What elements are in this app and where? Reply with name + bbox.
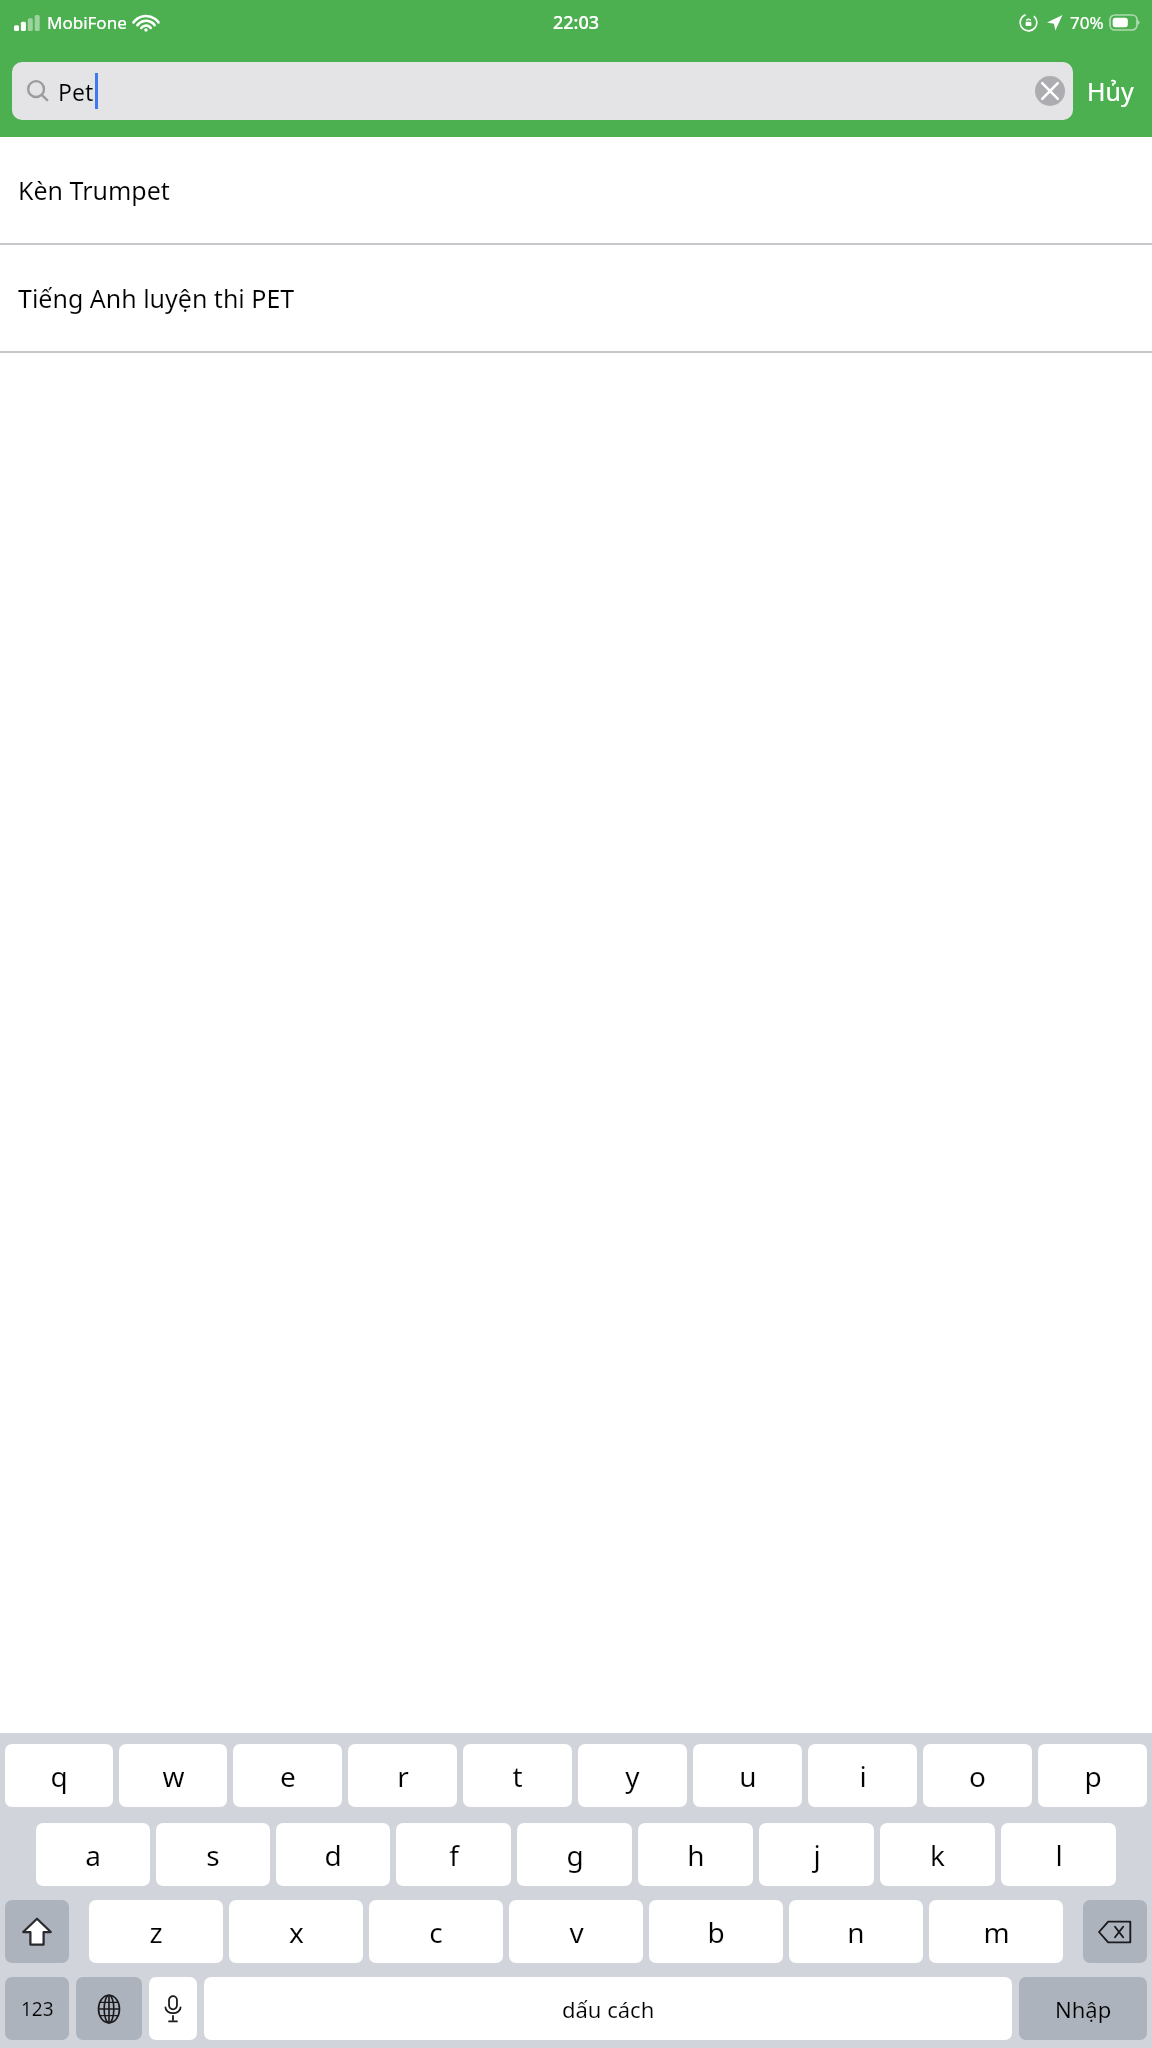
button[interactable]: r bbox=[348, 1744, 457, 1807]
button[interactable]: u bbox=[693, 1744, 802, 1807]
staticText: i bbox=[859, 1757, 867, 1795]
button[interactable]: i bbox=[808, 1744, 917, 1807]
staticText: n bbox=[847, 1913, 865, 1951]
button[interactable]: t bbox=[463, 1744, 572, 1807]
button[interactable]: Hủy bbox=[1073, 61, 1148, 121]
button[interactable]: o bbox=[923, 1744, 1032, 1807]
staticText: y bbox=[625, 1757, 640, 1795]
button[interactable]: dấu cách bbox=[204, 1977, 1012, 2040]
button[interactable]: Change keyboard language bbox=[76, 1977, 142, 2040]
staticText: Nhập bbox=[1055, 1994, 1112, 2024]
button[interactable]: Nhập bbox=[1019, 1977, 1147, 2040]
button[interactable]: Kèn Trumpet bbox=[0, 137, 1152, 243]
button[interactable]: f bbox=[396, 1823, 511, 1886]
staticText: 123 bbox=[21, 1996, 54, 2022]
staticText: u bbox=[739, 1757, 757, 1795]
staticText: b bbox=[707, 1913, 725, 1951]
staticText: 70% bbox=[1070, 11, 1104, 34]
staticText: f bbox=[449, 1836, 459, 1874]
button[interactable]: e bbox=[233, 1744, 342, 1807]
button[interactable]: c bbox=[369, 1900, 503, 1963]
button[interactable]: l bbox=[1001, 1823, 1116, 1886]
button[interactable]: b bbox=[649, 1900, 783, 1963]
staticText: e bbox=[280, 1757, 296, 1795]
button[interactable]: x bbox=[229, 1900, 363, 1963]
staticText: a bbox=[85, 1836, 101, 1874]
button[interactable]: w bbox=[119, 1744, 227, 1807]
button[interactable]: j bbox=[759, 1823, 874, 1886]
button[interactable]: Shift bbox=[5, 1900, 69, 1963]
staticText: w bbox=[162, 1757, 185, 1795]
staticText: m bbox=[983, 1913, 1010, 1951]
staticText: q bbox=[50, 1757, 68, 1795]
button[interactable]: m bbox=[929, 1900, 1063, 1963]
button[interactable]: Dictation bbox=[149, 1977, 197, 2040]
button[interactable]: a bbox=[36, 1823, 150, 1886]
button[interactable]: Backspace bbox=[1083, 1900, 1147, 1963]
staticText: p bbox=[1084, 1757, 1102, 1795]
button[interactable]: n bbox=[789, 1900, 923, 1963]
staticText: Pet bbox=[58, 76, 94, 107]
button[interactable]: d bbox=[276, 1823, 390, 1886]
staticText: g bbox=[566, 1836, 584, 1874]
button[interactable]: g bbox=[517, 1823, 632, 1886]
button[interactable]: Pet bbox=[12, 62, 1073, 120]
button[interactable]: s bbox=[156, 1823, 270, 1886]
staticText: x bbox=[289, 1913, 304, 1951]
staticText: Tiếng Anh luyện thi PET bbox=[18, 281, 295, 315]
button[interactable]: Clear text bbox=[1033, 74, 1067, 108]
staticText: 22:03 bbox=[553, 10, 600, 35]
button[interactable]: z bbox=[89, 1900, 223, 1963]
staticText: j bbox=[813, 1836, 821, 1874]
button[interactable]: v bbox=[509, 1900, 643, 1963]
staticText: o bbox=[969, 1757, 986, 1795]
staticText: MobiFone bbox=[47, 11, 127, 34]
staticText: s bbox=[206, 1836, 220, 1874]
staticText: Hủy bbox=[1087, 74, 1134, 108]
button[interactable]: k bbox=[880, 1823, 995, 1886]
staticText: h bbox=[687, 1836, 705, 1874]
staticText: dấu cách bbox=[562, 1994, 655, 2024]
staticText: v bbox=[569, 1913, 584, 1951]
button[interactable]: 123 bbox=[5, 1977, 69, 2040]
button[interactable]: y bbox=[578, 1744, 687, 1807]
button[interactable]: p bbox=[1038, 1744, 1147, 1807]
staticText: Kèn Trumpet bbox=[18, 173, 170, 207]
staticText: r bbox=[397, 1757, 409, 1795]
button[interactable]: Tiếng Anh luyện thi PET bbox=[0, 245, 1152, 351]
staticText: t bbox=[512, 1757, 523, 1795]
staticText: l bbox=[1055, 1836, 1063, 1874]
staticText: d bbox=[324, 1836, 342, 1874]
staticText: k bbox=[930, 1836, 945, 1874]
staticText: c bbox=[429, 1913, 443, 1951]
staticText: z bbox=[149, 1913, 163, 1951]
button[interactable]: q bbox=[5, 1744, 113, 1807]
button[interactable]: h bbox=[638, 1823, 753, 1886]
